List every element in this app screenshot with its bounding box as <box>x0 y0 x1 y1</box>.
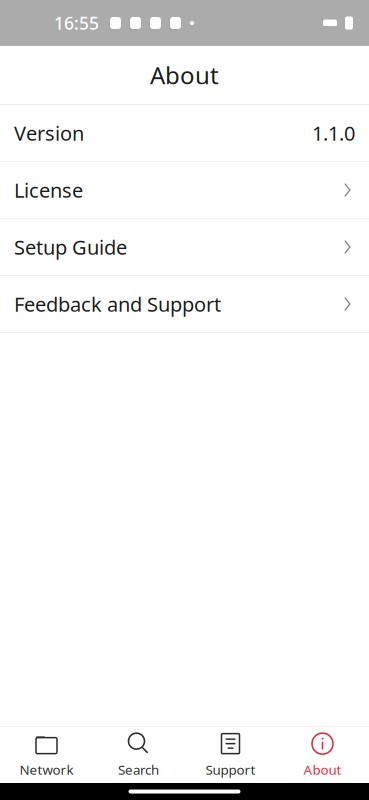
staticText: About <box>303 761 341 778</box>
button[interactable]: Search <box>92 727 184 783</box>
staticText: Network <box>19 761 73 778</box>
button[interactable]: Setup Guide <box>0 219 369 275</box>
button[interactable]: Support <box>184 727 276 783</box>
staticText: Version <box>14 120 84 146</box>
staticText: 16:55 <box>54 11 99 34</box>
staticText: License <box>14 177 83 203</box>
button[interactable]: Version <box>0 105 369 161</box>
staticText: Setup Guide <box>14 234 127 260</box>
button[interactable]: Feedback and Support <box>0 276 369 332</box>
staticText: Feedback and Support <box>14 291 221 317</box>
staticText: 1.1.0 <box>312 120 355 146</box>
staticText: Support <box>205 761 255 778</box>
button[interactable]: License <box>0 162 369 218</box>
staticText: Search <box>118 761 159 778</box>
button[interactable]: Network <box>0 727 92 783</box>
button[interactable]: About <box>276 727 368 783</box>
staticText: About <box>150 59 219 91</box>
